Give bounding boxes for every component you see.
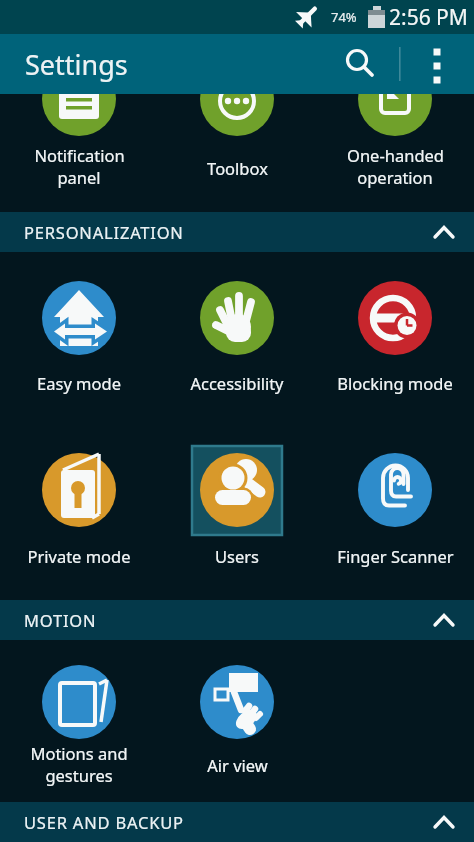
staticText: Private mode bbox=[27, 545, 131, 567]
button[interactable]: Easy mode bbox=[0, 273, 158, 433]
button[interactable]: Motions and bbox=[0, 657, 158, 817]
staticText: MOTION bbox=[24, 609, 97, 631]
button[interactable]: USER AND BACKUP bbox=[0, 802, 474, 842]
button[interactable]: Air view bbox=[158, 657, 316, 817]
button[interactable] bbox=[337, 34, 383, 94]
staticText: operation bbox=[357, 166, 433, 188]
button[interactable]: Users bbox=[158, 445, 316, 605]
staticText: Accessibility bbox=[190, 372, 284, 394]
staticText: panel bbox=[57, 166, 101, 188]
staticText: Toolbox bbox=[207, 157, 268, 179]
staticText: Easy mode bbox=[37, 372, 121, 394]
button[interactable] bbox=[418, 34, 458, 94]
button[interactable]: Toolbox bbox=[158, 54, 316, 214]
staticText: Air view bbox=[207, 754, 268, 776]
button[interactable]: Accessibility bbox=[158, 273, 316, 433]
staticText: Motions and bbox=[30, 742, 128, 764]
button[interactable]: Private mode bbox=[0, 445, 158, 605]
button[interactable]: PERSONALIZATION bbox=[0, 212, 474, 252]
staticText: 74% bbox=[331, 8, 357, 26]
staticText: Users bbox=[215, 545, 259, 567]
button[interactable]: Blocking mode bbox=[316, 273, 474, 433]
staticText: 2:56 PM bbox=[389, 3, 468, 32]
staticText: Finger Scanner bbox=[337, 545, 454, 567]
button[interactable]: Finger Scanner bbox=[316, 445, 474, 605]
staticText: USER AND BACKUP bbox=[24, 811, 184, 833]
staticText: Settings bbox=[25, 46, 128, 83]
button[interactable]: Notification bbox=[0, 54, 158, 214]
staticText: PERSONALIZATION bbox=[24, 221, 184, 243]
staticText: One-handed bbox=[347, 144, 444, 166]
staticText: Notification bbox=[34, 144, 125, 166]
button[interactable]: MOTION bbox=[0, 600, 474, 640]
staticText: gestures bbox=[45, 764, 113, 786]
button[interactable]: One-handed bbox=[316, 54, 474, 214]
staticText: Blocking mode bbox=[337, 372, 453, 394]
